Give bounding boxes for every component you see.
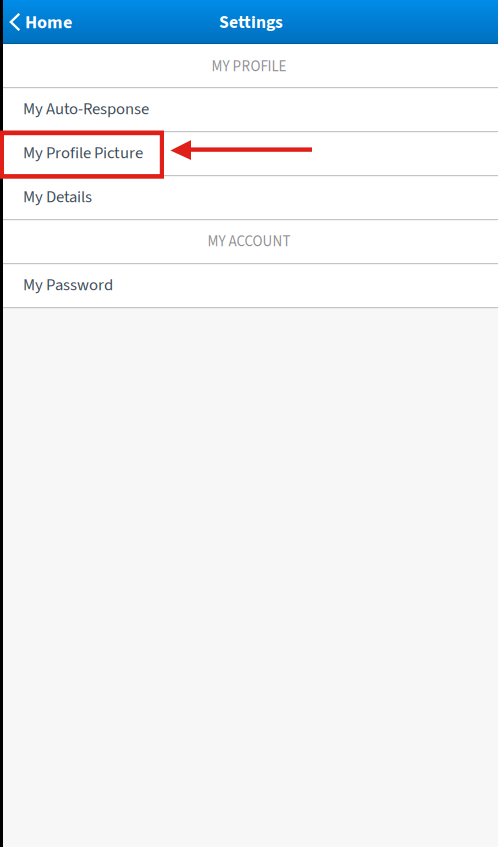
button[interactable]: Home [0, 0, 100, 44]
staticText: My Password [23, 273, 113, 297]
staticText: Home [25, 10, 72, 35]
staticText: MY PROFILE [211, 56, 286, 77]
staticText: MY ACCOUNT [207, 231, 290, 252]
staticText: My Details [23, 185, 92, 209]
button[interactable]: My Auto-Response [0, 87, 498, 131]
staticText: Settings [219, 10, 283, 35]
button[interactable]: My Profile Picture [0, 131, 498, 175]
button[interactable]: My Details [0, 175, 498, 219]
button[interactable]: My Password [0, 263, 498, 307]
staticText: My Profile Picture [23, 141, 143, 165]
staticText: My Auto-Response [23, 97, 149, 121]
